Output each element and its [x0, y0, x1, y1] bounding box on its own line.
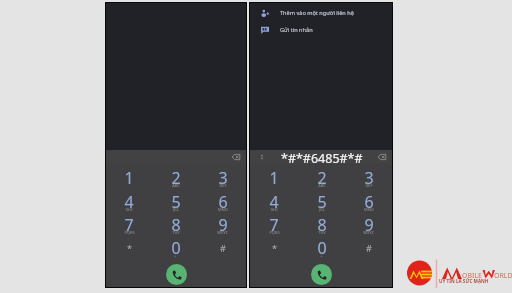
- staticText: 1: [269, 167, 279, 188]
- staticText: 6: [364, 191, 374, 212]
- staticText: 6: [218, 191, 228, 212]
- button[interactable]: 6: [199, 189, 246, 210]
- staticText: ABC: [172, 183, 180, 188]
- button[interactable]: 5: [152, 189, 199, 210]
- staticText: DEF: [219, 183, 227, 188]
- button[interactable]: 9: [199, 212, 246, 233]
- staticText: *#*#6485#*#: [281, 150, 363, 164]
- button[interactable]: 2: [298, 165, 345, 186]
- button[interactable]: Backspace: [378, 154, 386, 160]
- staticText: OBILE: [462, 271, 482, 281]
- button[interactable]: Backspace: [232, 154, 240, 160]
- button[interactable]: #: [345, 235, 392, 256]
- staticText: 0: [171, 237, 181, 258]
- staticText: JKL: [319, 207, 325, 212]
- staticText: +: [174, 253, 177, 258]
- staticText: 2: [317, 167, 327, 188]
- staticText: 5: [317, 191, 327, 212]
- button[interactable]: Call: [311, 264, 332, 285]
- staticText: #: [366, 242, 372, 254]
- staticText: UY TÍN LÀ SỨC MẠNH: [439, 278, 489, 284]
- button[interactable]: 1: [106, 165, 152, 186]
- button[interactable]: 0: [152, 235, 199, 256]
- staticText: MNO: [218, 207, 228, 212]
- staticText: PQRS: [124, 230, 135, 235]
- staticText: ORLD: [494, 271, 512, 281]
- staticText: 3: [364, 167, 374, 188]
- staticText: 8: [317, 214, 327, 235]
- staticText: TUV: [318, 230, 326, 235]
- staticText: DEF: [365, 183, 373, 188]
- staticText: Gửi tin nhắn: [280, 26, 313, 34]
- button[interactable]: 1: [250, 165, 298, 186]
- staticText: 9: [364, 214, 374, 235]
- button[interactable]: 8: [152, 212, 199, 233]
- button[interactable]: *: [250, 235, 298, 256]
- button[interactable]: 3: [199, 165, 246, 186]
- staticText: 5: [171, 191, 181, 212]
- button[interactable]: 3: [345, 165, 392, 186]
- button[interactable]: Gửi tin nhắn: [250, 21, 392, 38]
- staticText: GHI: [125, 207, 133, 212]
- staticText: WXYZ: [363, 230, 374, 235]
- staticText: WXYZ: [217, 230, 228, 235]
- staticText: *: [127, 242, 132, 254]
- staticText: TUV: [172, 230, 180, 235]
- button[interactable]: 9: [345, 212, 392, 233]
- button[interactable]: 6: [345, 189, 392, 210]
- staticText: ABC: [318, 183, 326, 188]
- staticText: Thêm vào một người liên hệ: [280, 9, 354, 17]
- button[interactable]: #: [199, 235, 246, 256]
- staticText: PQRS: [269, 230, 280, 235]
- staticText: 7: [269, 214, 279, 235]
- button[interactable]: 8: [298, 212, 345, 233]
- button[interactable]: *: [106, 235, 152, 256]
- button[interactable]: More options: [258, 153, 266, 161]
- staticText: 1: [124, 167, 134, 188]
- staticText: 8: [171, 214, 181, 235]
- staticText: MNO: [364, 207, 374, 212]
- staticText: +: [320, 253, 323, 258]
- staticText: 4: [124, 191, 134, 212]
- staticText: GHI: [270, 207, 278, 212]
- button[interactable]: 5: [298, 189, 345, 210]
- staticText: *: [272, 242, 277, 254]
- staticText: 3: [218, 167, 228, 188]
- staticText: 2: [171, 167, 181, 188]
- button[interactable]: Thêm vào một người liên hệ: [250, 4, 392, 21]
- staticText: #: [220, 242, 226, 254]
- staticText: 0: [317, 237, 327, 258]
- staticText: JKL: [173, 207, 179, 212]
- staticText: 4: [269, 191, 279, 212]
- button[interactable]: 7: [250, 212, 298, 233]
- button[interactable]: 7: [106, 212, 152, 233]
- button[interactable]: 4: [250, 189, 298, 210]
- staticText: 7: [124, 214, 134, 235]
- button[interactable]: 0: [298, 235, 345, 256]
- button[interactable]: 2: [152, 165, 199, 186]
- button[interactable]: 4: [106, 189, 152, 210]
- button[interactable]: Call: [166, 264, 187, 285]
- staticText: 9: [218, 214, 228, 235]
